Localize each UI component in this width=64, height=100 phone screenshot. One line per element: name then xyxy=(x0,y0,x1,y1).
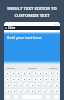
button[interactable] xyxy=(22,71,26,75)
button[interactable] xyxy=(49,77,53,81)
button[interactable]: suggest xyxy=(28,66,37,69)
button[interactable] xyxy=(36,89,40,93)
button[interactable] xyxy=(22,77,26,81)
button[interactable] xyxy=(54,89,58,93)
button[interactable]: Enter xyxy=(54,95,59,99)
button[interactable] xyxy=(42,89,46,93)
button[interactable] xyxy=(55,71,59,75)
button[interactable]: suggest xyxy=(6,66,15,69)
button[interactable] xyxy=(33,71,37,75)
button[interactable] xyxy=(27,77,31,81)
button[interactable] xyxy=(33,77,37,81)
button[interactable] xyxy=(30,83,34,87)
staticText: Editor xyxy=(8,26,16,30)
button[interactable] xyxy=(38,77,42,81)
button[interactable] xyxy=(24,89,28,93)
button[interactable] xyxy=(18,89,22,93)
button[interactable] xyxy=(55,77,59,81)
button[interactable] xyxy=(48,89,52,93)
button[interactable] xyxy=(12,89,16,93)
button[interactable]: Period xyxy=(46,95,50,99)
button[interactable] xyxy=(6,83,10,87)
button[interactable] xyxy=(5,77,9,81)
button[interactable]: suggest xyxy=(49,66,58,69)
staticText: INSULT TEXT EDITOR TO xyxy=(7,6,57,12)
button[interactable] xyxy=(36,83,40,87)
button[interactable] xyxy=(11,71,15,75)
button[interactable] xyxy=(48,83,52,87)
button[interactable] xyxy=(44,71,48,75)
button[interactable] xyxy=(30,89,34,93)
button[interactable] xyxy=(18,83,22,87)
button[interactable] xyxy=(42,83,46,87)
button[interactable] xyxy=(11,77,15,81)
button[interactable] xyxy=(5,71,9,75)
button[interactable] xyxy=(6,89,10,93)
button[interactable] xyxy=(54,83,58,87)
button[interactable] xyxy=(44,77,48,81)
staticText: CUSTOMIZE TEXT xyxy=(14,13,50,19)
button[interactable] xyxy=(49,71,53,75)
button[interactable] xyxy=(24,83,28,87)
button[interactable] xyxy=(12,83,16,87)
button[interactable] xyxy=(27,71,31,75)
button[interactable] xyxy=(16,77,20,81)
button[interactable] xyxy=(38,71,42,75)
staticText: Bold your text here xyxy=(7,35,42,40)
button[interactable]: Symbols xyxy=(5,95,10,99)
button[interactable]: Menu xyxy=(5,27,7,29)
button[interactable]: Emoji xyxy=(14,95,18,99)
button[interactable] xyxy=(16,71,20,75)
